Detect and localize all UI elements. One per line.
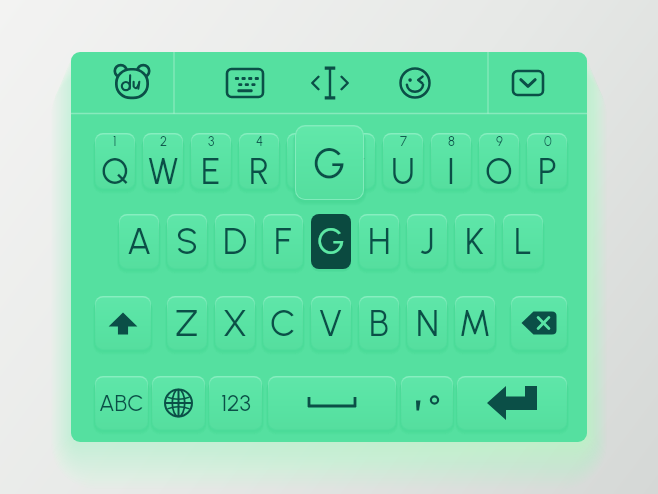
staticText: V	[319, 302, 343, 345]
button[interactable]: 1	[95, 133, 135, 189]
staticText: L	[514, 220, 533, 263]
button[interactable]: 7	[383, 133, 423, 189]
button[interactable]: 5	[287, 133, 327, 189]
button[interactable]: Keyboard layout	[219, 58, 271, 108]
button[interactable]: 6	[335, 133, 375, 189]
button[interactable]: Hide keyboard	[502, 58, 554, 108]
button[interactable]: ABC	[95, 376, 148, 430]
button[interactable]: X	[215, 296, 255, 350]
button[interactable]: 0	[527, 133, 567, 189]
staticText: G	[313, 138, 346, 188]
staticText: P	[538, 150, 557, 190]
staticText: W	[148, 150, 179, 190]
staticText: 9	[496, 134, 503, 150]
staticText: U	[391, 150, 415, 190]
button[interactable]: Backspace	[511, 296, 567, 350]
button[interactable]: K	[455, 214, 495, 269]
staticText: Q	[101, 150, 129, 190]
button[interactable]: 4	[239, 133, 279, 189]
staticText: C	[270, 302, 296, 345]
staticText: 0	[544, 134, 552, 150]
staticText: ABC	[99, 389, 144, 417]
button[interactable]: M	[455, 296, 495, 350]
button[interactable]: 3	[191, 133, 231, 189]
button[interactable]: 2	[143, 133, 183, 189]
button[interactable]: B	[359, 296, 399, 350]
button[interactable]: F	[263, 214, 303, 269]
button[interactable]: Z	[167, 296, 207, 350]
button[interactable]: H	[359, 214, 399, 269]
button[interactable]: A	[119, 214, 159, 269]
staticText: 1	[113, 134, 117, 150]
button[interactable]: 8	[431, 133, 471, 189]
staticText: A	[127, 220, 152, 263]
staticText: G	[317, 220, 345, 263]
button[interactable]: Switch language	[152, 376, 205, 430]
staticText: T	[296, 150, 319, 190]
button[interactable]: Move cursor	[304, 58, 356, 108]
staticText: B	[369, 302, 390, 345]
staticText: I	[447, 150, 455, 190]
button[interactable]: 9	[479, 133, 519, 189]
button[interactable]: Shift	[95, 296, 151, 350]
button[interactable]: V	[311, 296, 351, 350]
staticText: Y	[344, 150, 366, 190]
staticText: O	[485, 150, 513, 190]
staticText: R	[249, 150, 270, 190]
button[interactable]: Comma and period	[401, 376, 453, 430]
staticText: S	[176, 220, 198, 263]
button[interactable]: S	[167, 214, 207, 269]
button[interactable]: Input method logo	[106, 58, 158, 108]
staticText: N	[416, 302, 439, 345]
button[interactable]: Space	[268, 376, 396, 430]
button[interactable]: C	[263, 296, 303, 350]
staticText: X	[223, 302, 247, 345]
button[interactable]: N	[407, 296, 447, 350]
staticText: 2	[160, 134, 168, 150]
staticText: D	[223, 220, 248, 263]
staticText: 3	[208, 134, 215, 150]
staticText: Z	[175, 302, 199, 345]
staticText: H	[368, 220, 391, 263]
staticText: 7	[400, 134, 407, 150]
button[interactable]: G	[311, 214, 351, 269]
staticText: K	[465, 220, 485, 263]
button[interactable]: Emoji	[389, 58, 441, 108]
button[interactable]: J	[407, 214, 447, 269]
staticText: 4	[256, 134, 264, 150]
staticText: 123	[221, 389, 251, 417]
staticText: F	[274, 220, 292, 263]
staticText: J	[420, 220, 435, 263]
button[interactable]: Enter	[457, 376, 567, 430]
button[interactable]: D	[215, 214, 255, 269]
staticText: E	[201, 150, 221, 190]
button[interactable]: 123	[209, 376, 262, 430]
staticText: 8	[448, 134, 455, 150]
button[interactable]: L	[503, 214, 543, 269]
staticText: M	[459, 302, 491, 345]
